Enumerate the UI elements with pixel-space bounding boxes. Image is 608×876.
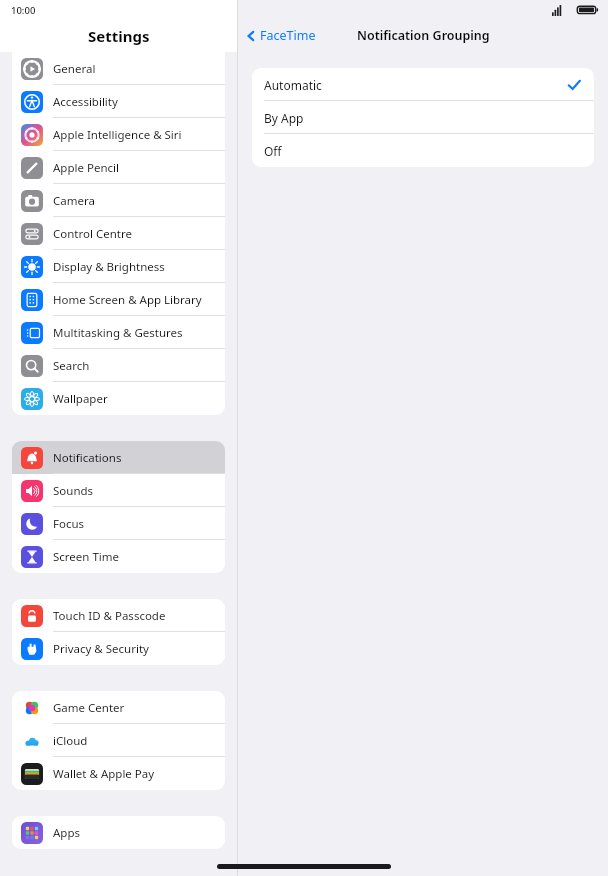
staticText: Apple Intelligence & Siri [53, 127, 182, 143]
button[interactable]: Camera [12, 184, 225, 217]
button[interactable]: Wallpaper [12, 382, 225, 415]
other: Signal and battery status [552, 4, 598, 16]
staticText: Settings [88, 26, 150, 46]
staticText: Sounds [53, 483, 94, 499]
button[interactable]: Apple Pencil [12, 151, 225, 184]
staticText: iCloud [53, 733, 88, 749]
staticText: Search [53, 358, 90, 374]
button[interactable]: Sounds [12, 474, 225, 507]
staticText: Control Centre [53, 226, 132, 242]
staticText: Wallpaper [53, 391, 108, 407]
staticText: Notification Grouping [357, 27, 490, 44]
button[interactable]: Touch ID & Passcode [12, 599, 225, 632]
button[interactable]: Accessibility [12, 85, 225, 118]
staticText: Screen Time [53, 549, 120, 565]
button[interactable]: iCloud [12, 724, 225, 757]
other: Selected [567, 78, 581, 92]
button[interactable]: Game Center [12, 691, 225, 724]
staticText: Touch ID & Passcode [53, 608, 166, 624]
button[interactable]: Apps [12, 816, 225, 849]
button[interactable]: Apple Intelligence & Siri [12, 118, 225, 151]
button[interactable]: Wallet & Apple Pay [12, 757, 225, 790]
staticText: FaceTime [260, 27, 316, 44]
staticText: General [53, 61, 96, 77]
button[interactable]: Screen Time [12, 540, 225, 573]
button[interactable]: Multitasking & Gestures [12, 316, 225, 349]
button[interactable]: Off [252, 134, 594, 167]
staticText: Home Screen & App Library [53, 292, 202, 308]
button[interactable]: Search [12, 349, 225, 382]
staticText: By App [264, 110, 304, 126]
staticText: Apps [53, 825, 81, 841]
button[interactable]: General [12, 52, 225, 85]
staticText: Multitasking & Gestures [53, 325, 183, 341]
staticText: Notifications [53, 450, 122, 466]
staticText: Focus [53, 516, 85, 532]
staticText: Display & Brightness [53, 259, 165, 275]
staticText: 10:00 [11, 4, 36, 17]
button[interactable]: Home Screen & App Library [12, 283, 225, 316]
button[interactable]: Notifications [12, 441, 225, 474]
staticText: Apple Pencil [53, 160, 119, 176]
staticText: Accessibility [53, 94, 118, 110]
button[interactable]: By App [252, 101, 594, 134]
staticText: Off [264, 143, 282, 159]
button[interactable]: Automatic [252, 68, 594, 101]
button[interactable]: Focus [12, 507, 225, 540]
button[interactable]: Display & Brightness [12, 250, 225, 283]
button[interactable]: Privacy & Security [12, 632, 225, 665]
staticText: Automatic [264, 77, 322, 93]
staticText: Camera [53, 193, 95, 209]
staticText: Game Center [53, 700, 125, 716]
button[interactable]: Control Centre [12, 217, 225, 250]
staticText: Wallet & Apple Pay [53, 766, 155, 782]
button[interactable]: FaceTime [246, 27, 316, 44]
staticText: Privacy & Security [53, 641, 149, 657]
